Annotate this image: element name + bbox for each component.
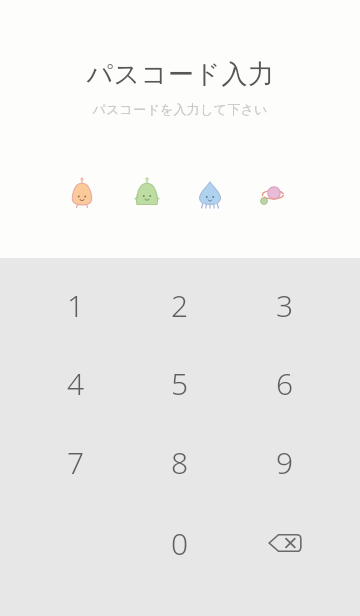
staticText: パスコード入力 bbox=[86, 58, 275, 91]
staticText: 1 bbox=[67, 285, 85, 326]
button[interactable]: 3 bbox=[233, 266, 337, 344]
button[interactable]: 0 bbox=[128, 504, 232, 582]
button[interactable]: 6 bbox=[233, 344, 337, 422]
staticText: 3 bbox=[276, 285, 294, 326]
button[interactable]: 4 bbox=[24, 344, 128, 422]
staticText: 0 bbox=[171, 523, 189, 564]
staticText: 6 bbox=[276, 363, 294, 404]
staticText: 9 bbox=[276, 442, 294, 483]
button[interactable]: 9 bbox=[233, 423, 337, 501]
staticText: 4 bbox=[67, 363, 85, 404]
staticText: 5 bbox=[171, 363, 189, 404]
staticText: 8 bbox=[171, 442, 189, 483]
button[interactable]: 5 bbox=[128, 344, 232, 422]
staticText: パスコードを入力して下さい bbox=[92, 101, 268, 117]
button[interactable]: 2 bbox=[128, 266, 232, 344]
staticText: 7 bbox=[67, 442, 85, 483]
button[interactable]: 7 bbox=[24, 423, 128, 501]
staticText: 2 bbox=[171, 285, 189, 326]
button[interactable]: 1 bbox=[24, 266, 128, 344]
button[interactable]: 8 bbox=[128, 423, 232, 501]
button[interactable]: Delete bbox=[233, 504, 337, 582]
